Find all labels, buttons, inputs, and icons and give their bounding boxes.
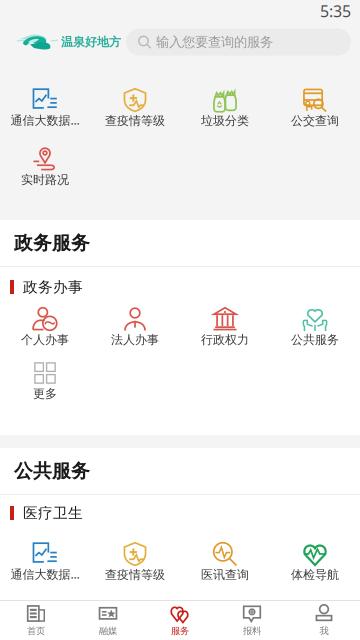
button[interactable]: 法人办事 — [90, 307, 180, 347]
staticText: 法人办事 — [111, 332, 159, 347]
staticText: 医疗卫生 — [23, 504, 83, 522]
staticText: 政务办事 — [23, 278, 83, 296]
staticText: 温泉好地方 — [61, 35, 121, 49]
button[interactable]: 体检导航 — [270, 542, 360, 582]
staticText: 体检导航 — [291, 567, 339, 582]
button[interactable]: 更多 — [0, 361, 90, 401]
staticText: 政务服务 — [14, 231, 90, 254]
staticText: 通信大数据... — [10, 112, 79, 128]
button[interactable]: 报料 — [216, 600, 288, 640]
button[interactable]: 个人办事 — [0, 307, 90, 347]
staticText: 公交查询 — [291, 113, 339, 128]
button[interactable]: 首页 — [0, 600, 72, 640]
button[interactable]: 垃圾分类 — [180, 88, 270, 128]
staticText: 垃圾分类 — [201, 113, 249, 128]
staticText: 医讯查询 — [201, 567, 249, 582]
button[interactable]: 温泉好地方 — [17, 31, 121, 53]
button[interactable]: 查疫情等级 — [90, 542, 180, 582]
staticText: 报料 — [243, 625, 261, 636]
button[interactable]: 通信大数据... — [0, 542, 90, 582]
staticText: 行政权力 — [201, 332, 249, 347]
staticText: 实时路况 — [21, 172, 69, 187]
staticText: 公共服务 — [14, 459, 90, 482]
button[interactable]: 行政权力 — [180, 307, 270, 347]
button[interactable]: 公共服务 — [270, 307, 360, 347]
staticText: 融媒 — [99, 625, 117, 636]
staticText: 公共服务 — [291, 332, 339, 347]
button[interactable]: 医讯查询 — [180, 542, 270, 582]
button[interactable]: 服务 — [144, 600, 216, 640]
staticText: 我 — [319, 625, 328, 636]
staticText: 首页 — [27, 625, 45, 636]
staticText: 个人办事 — [21, 332, 69, 347]
button[interactable]: 输入您要查询的服务 — [126, 28, 351, 55]
staticText: 更多 — [33, 386, 57, 401]
staticText: 通信大数据... — [10, 566, 79, 582]
button[interactable]: 通信大数据... — [0, 88, 90, 128]
button[interactable]: 实时路况 — [0, 147, 90, 187]
button[interactable]: 公交查询 — [270, 88, 360, 128]
staticText: 查疫情等级 — [105, 113, 165, 128]
button[interactable]: 查疫情等级 — [90, 88, 180, 128]
button[interactable]: 融媒 — [72, 600, 144, 640]
button[interactable]: 我 — [288, 600, 360, 640]
staticText: 输入您要查询的服务 — [156, 34, 273, 50]
staticText: 查疫情等级 — [105, 567, 165, 582]
staticText: 服务 — [171, 625, 189, 636]
staticText: 5:35 — [320, 0, 351, 22]
